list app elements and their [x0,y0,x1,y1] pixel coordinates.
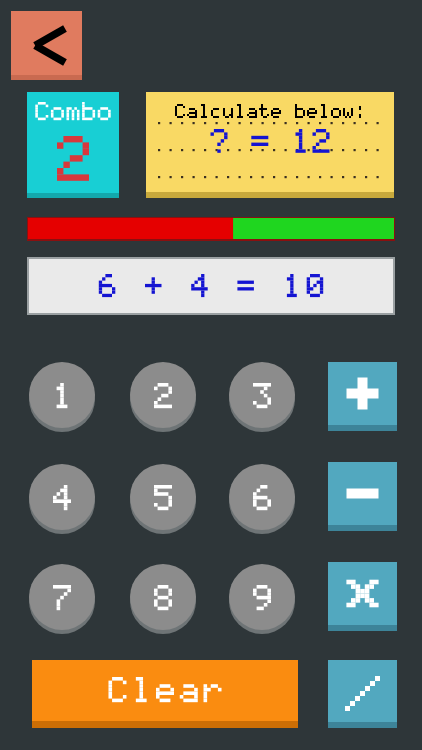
button[interactable] [29,362,95,432]
button[interactable] [130,564,196,634]
button[interactable] [229,362,295,432]
button[interactable] [130,362,196,432]
button[interactable] [229,464,295,534]
button[interactable] [29,564,95,634]
button[interactable]: Back [11,11,82,80]
button[interactable]: Minus [328,462,397,531]
button[interactable] [27,92,119,198]
button[interactable]: Multiply [328,562,397,631]
button[interactable] [29,464,95,534]
button[interactable] [146,92,394,198]
button[interactable]: Divide [328,660,397,728]
button[interactable] [229,564,295,634]
button[interactable] [27,257,395,315]
button[interactable]: Plus [328,362,397,431]
button[interactable] [32,660,298,728]
button[interactable] [130,464,196,534]
